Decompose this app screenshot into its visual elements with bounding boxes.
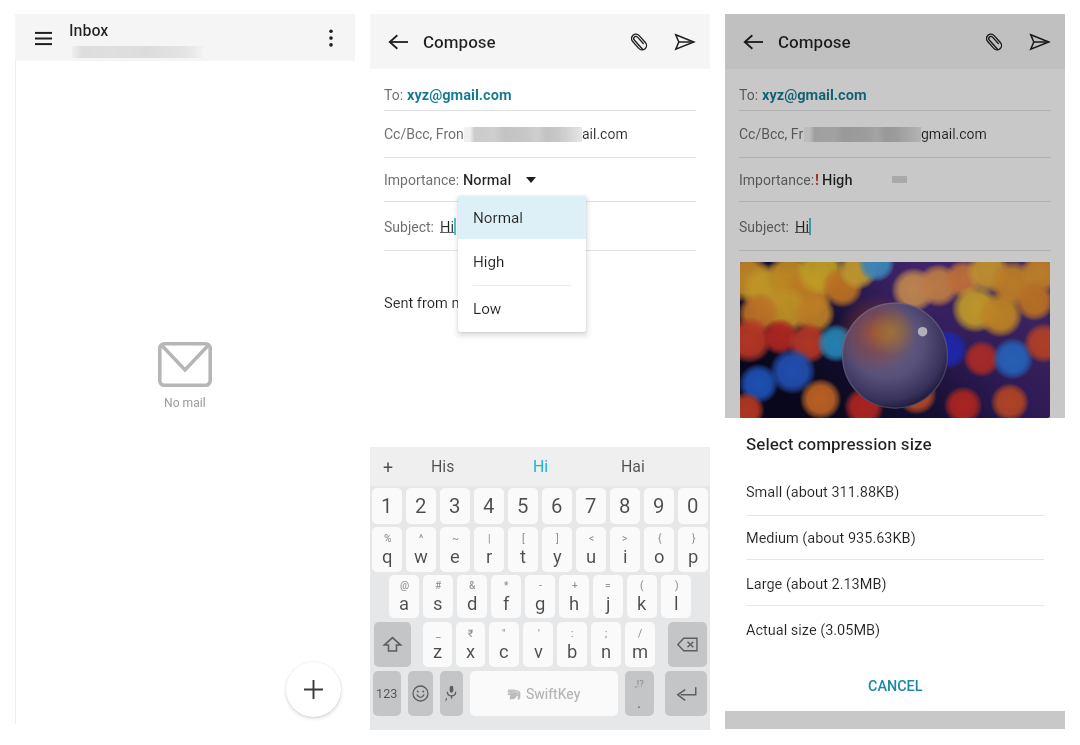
button[interactable]: Period	[625, 671, 654, 716]
button[interactable]: High	[458, 239, 586, 285]
button[interactable]: }	[678, 527, 708, 572]
button[interactable]: 7	[576, 488, 606, 524]
staticText: Hi	[795, 218, 809, 235]
button[interactable]: Shift	[374, 622, 411, 667]
button[interactable]: 6	[542, 488, 572, 524]
button[interactable]: 1	[372, 488, 402, 524]
button[interactable]: =	[593, 575, 623, 618]
button[interactable]: /	[625, 622, 655, 667]
button[interactable]: >	[610, 527, 640, 572]
staticText: Low	[473, 300, 502, 318]
staticText: u	[586, 546, 597, 568]
button[interactable]: ^	[406, 527, 436, 572]
staticText: w	[414, 546, 428, 568]
button[interactable]: (	[627, 575, 657, 618]
button[interactable]: Emoji	[408, 671, 433, 716]
staticText: g	[535, 593, 546, 615]
button[interactable]: _	[423, 622, 452, 667]
button[interactable]: #	[423, 575, 453, 618]
staticText: :	[571, 628, 574, 640]
staticText: >	[622, 533, 628, 545]
button[interactable]: :	[557, 622, 587, 667]
staticText: ~	[452, 533, 459, 545]
button[interactable]: Voice input	[440, 671, 463, 716]
staticText: Small (about 311.88KB)	[746, 484, 900, 501]
button[interactable]: Backspace	[668, 622, 707, 667]
button[interactable]: Low	[458, 286, 586, 332]
staticText: [	[522, 533, 525, 545]
button[interactable]: Attach file	[977, 25, 1011, 59]
staticText: }	[692, 533, 696, 545]
button[interactable]: 0	[678, 488, 708, 524]
button[interactable]: ]	[542, 527, 572, 572]
staticText: gmail.com	[921, 126, 987, 142]
button[interactable]: <	[576, 527, 606, 572]
staticText: "	[502, 628, 506, 640]
staticText: Medium (about 935.63KB)	[746, 530, 916, 547]
staticText: Subject:	[384, 219, 434, 235]
staticText: High	[822, 171, 853, 188]
button[interactable]: 2	[406, 488, 436, 524]
button[interactable]: 8	[610, 488, 640, 524]
staticText: y	[553, 546, 562, 568]
staticText: +	[572, 580, 578, 592]
button[interactable]: Space	[470, 671, 618, 716]
button[interactable]: %	[372, 527, 402, 572]
staticText: #	[435, 580, 442, 592]
staticText: Actual size (3.05MB)	[746, 622, 881, 639]
staticText: m	[632, 641, 649, 663]
button[interactable]: Attach file	[622, 25, 656, 59]
button[interactable]: @	[389, 575, 419, 618]
button[interactable]: )	[661, 575, 691, 618]
staticText: z	[433, 641, 443, 663]
button[interactable]: {	[644, 527, 674, 572]
button[interactable]: [	[508, 527, 538, 572]
button[interactable]: 4	[474, 488, 504, 524]
button[interactable]: Small (about 311.88KB)	[725, 470, 1065, 514]
staticText: s	[433, 593, 443, 615]
staticText: His	[431, 457, 455, 476]
staticText: @	[400, 580, 410, 592]
staticText: Normal	[473, 209, 523, 227]
button[interactable]: Normal	[458, 196, 586, 239]
button[interactable]: *	[491, 575, 521, 618]
staticText: SwiftKey	[526, 686, 581, 702]
staticText: Sent from m	[384, 294, 465, 311]
button[interactable]: Compose new mail	[286, 662, 341, 717]
staticText: Large (about 2.13MB)	[746, 576, 887, 593]
button[interactable]: |	[474, 527, 504, 572]
staticText: ,	[445, 687, 448, 702]
staticText: 0	[687, 494, 699, 518]
button[interactable]: ₹	[456, 622, 485, 667]
button[interactable]: 3	[440, 488, 470, 524]
button[interactable]: Send	[667, 25, 701, 59]
button[interactable]: +	[559, 575, 589, 618]
staticText: r	[486, 546, 493, 568]
button[interactable]: Medium (about 935.63KB)	[725, 516, 1065, 560]
staticText: High	[473, 253, 505, 271]
button[interactable]: 5	[508, 488, 538, 524]
button[interactable]: -	[525, 575, 555, 618]
button[interactable]: Back	[382, 26, 414, 58]
button[interactable]: Back	[737, 26, 769, 58]
staticText: ^	[419, 533, 424, 545]
button[interactable]: 9	[644, 488, 674, 524]
button[interactable]: Open navigation drawer	[28, 23, 58, 53]
button[interactable]: Enter	[665, 671, 707, 716]
button[interactable]: Numbers	[373, 671, 401, 716]
staticText: xyz@gmail.com	[407, 86, 512, 103]
button[interactable]: &	[457, 575, 487, 618]
staticText: Cc/Bcc, Fr	[739, 126, 804, 142]
button[interactable]: CANCEL	[848, 669, 943, 704]
staticText: |	[488, 533, 491, 545]
button[interactable]: Actual size (3.05MB)	[725, 608, 1065, 652]
button[interactable]: "	[489, 622, 519, 667]
staticText: 1	[381, 494, 393, 518]
button[interactable]: Send	[1022, 25, 1056, 59]
button[interactable]: ~	[440, 527, 470, 572]
staticText: +	[383, 456, 394, 477]
button[interactable]: '	[523, 622, 553, 667]
button[interactable]: More options	[316, 23, 346, 53]
button[interactable]: Large (about 2.13MB)	[725, 562, 1065, 606]
button[interactable]: ;	[591, 622, 621, 667]
